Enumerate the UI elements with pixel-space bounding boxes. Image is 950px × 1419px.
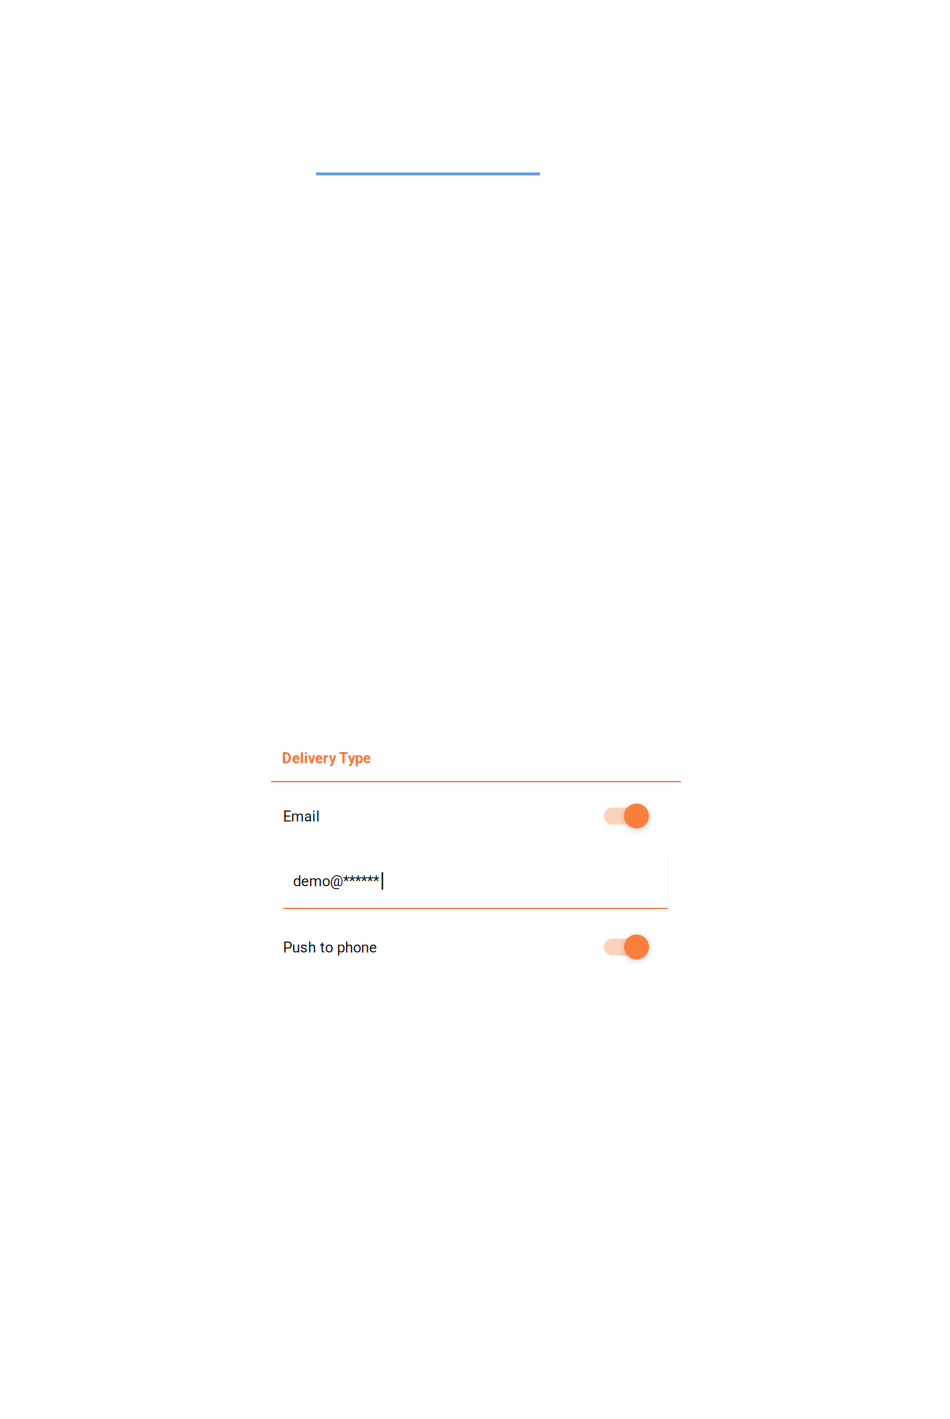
button[interactable]: On [283, 934, 649, 960]
button[interactable]: On [283, 803, 649, 829]
staticText: demo@****** [293, 873, 379, 890]
staticText: Email [283, 808, 320, 825]
button[interactable]: Email address [283, 856, 669, 911]
staticText: Push to phone [283, 939, 377, 956]
staticText: Delivery Type [282, 750, 371, 767]
